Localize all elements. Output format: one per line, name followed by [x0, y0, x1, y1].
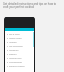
- staticText: Old Fashioned: [9, 45, 23, 48]
- staticText: Negroni: [9, 41, 17, 44]
- button[interactable]: Daiquiri: [7, 52, 34, 56]
- staticText: Cosmopolitan: [9, 61, 23, 64]
- staticText: Get detailed instructions and tips on ho…: [3, 2, 59, 8]
- button[interactable]: Whiskey Sour: [7, 56, 34, 60]
- button[interactable]: Cosmopolitan: [7, 60, 34, 64]
- staticText: Margarita: [9, 49, 19, 52]
- button[interactable]: Gin & Tonic: [7, 32, 34, 36]
- button[interactable]: Margarita: [7, 48, 34, 52]
- button[interactable]: Negroni: [7, 40, 34, 44]
- button[interactable]: Mojito Classic: [7, 36, 34, 40]
- staticText: Mojito Classic: [9, 37, 22, 40]
- button[interactable]: Espresso Martini: [7, 64, 34, 68]
- staticText: Gin & Tonic: [9, 33, 20, 36]
- button[interactable]: Old Fashioned: [7, 44, 34, 48]
- staticText: Whiskey Sour: [9, 57, 22, 60]
- staticText: Daiquiri: [9, 53, 17, 56]
- staticText: Espresso Martini: [9, 65, 25, 68]
